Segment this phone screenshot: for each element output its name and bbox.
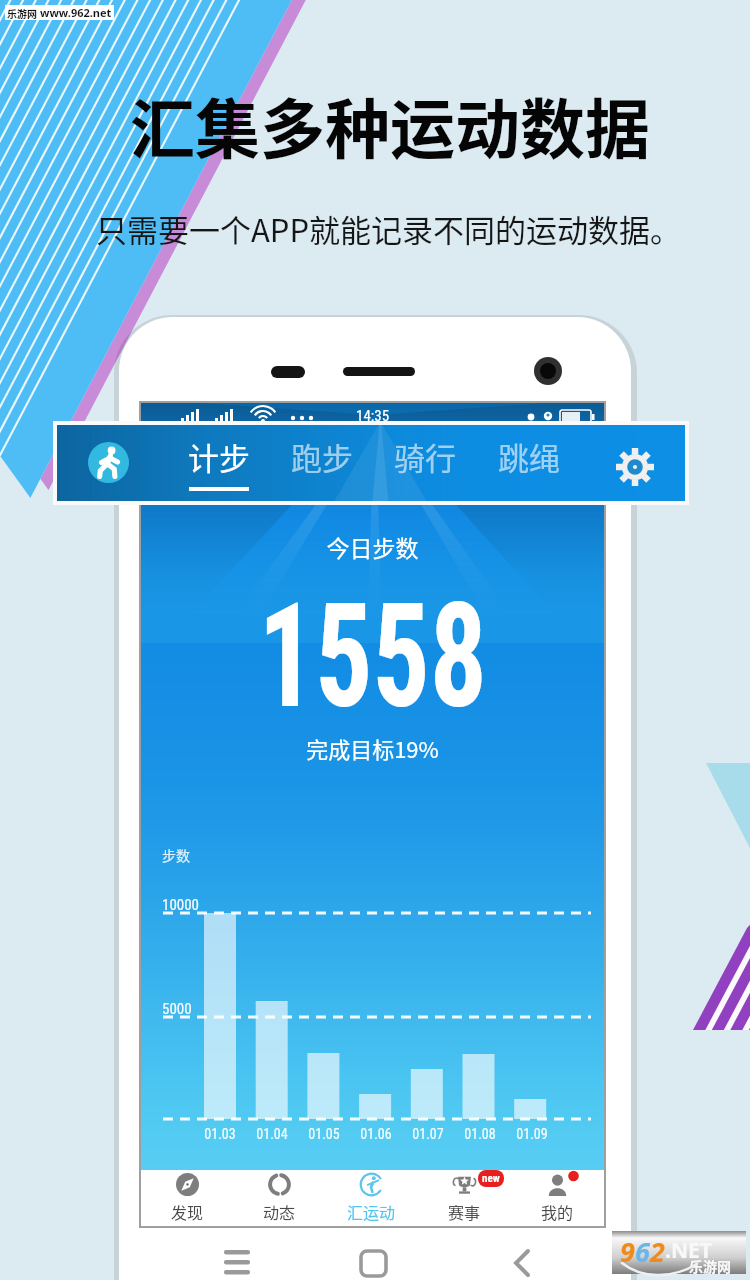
- staticText: 乐游网: [7, 6, 37, 20]
- staticText: 01.07: [402, 1126, 454, 1142]
- button[interactable]: 汇运动: [325, 1170, 418, 1226]
- button[interactable]: 赛事: [418, 1170, 511, 1226]
- button[interactable]: 计步: [174, 434, 264, 498]
- button[interactable]: 乐游网: [7, 5, 112, 20]
- staticText: 动态: [263, 1200, 296, 1223]
- button[interactable]: 骑行: [380, 434, 470, 498]
- button[interactable]: 发现: [141, 1170, 233, 1226]
- staticText: .NET: [665, 1236, 712, 1265]
- staticText: 骑行: [394, 434, 456, 479]
- button[interactable]: 动态: [233, 1170, 325, 1226]
- staticText: 只需要一个APP就能记录不同的运动数据。: [96, 206, 682, 251]
- staticText: 14:35: [356, 407, 390, 425]
- button[interactable]: Settings: [616, 448, 654, 486]
- staticText: 2: [650, 1233, 665, 1270]
- staticText: 汇集多种运动数据: [130, 78, 651, 172]
- staticText: 跳绳: [498, 434, 560, 479]
- staticText: 01.03: [194, 1126, 246, 1142]
- staticText: www.962.net: [40, 5, 112, 20]
- staticText: 01.05: [298, 1126, 350, 1142]
- staticText: 今日步数: [141, 530, 604, 563]
- staticText: 汇运动: [347, 1200, 396, 1223]
- staticText: new: [482, 1172, 500, 1185]
- staticText: 01.04: [246, 1126, 298, 1142]
- staticText: 10000: [162, 896, 200, 914]
- button[interactable]: 我的: [511, 1170, 604, 1226]
- staticText: 发现: [171, 1200, 204, 1223]
- staticText: 步数: [162, 845, 190, 865]
- staticText: 6: [635, 1233, 650, 1270]
- staticText: 5000: [162, 1000, 192, 1018]
- staticText: 赛事: [448, 1200, 481, 1223]
- staticText: 01.08: [454, 1126, 506, 1142]
- staticText: 我的: [541, 1200, 574, 1223]
- staticText: 完成目标19%: [141, 732, 604, 764]
- staticText: 乐游网: [689, 1256, 731, 1276]
- staticText: 9: [620, 1233, 635, 1270]
- staticText: 01.06: [350, 1126, 402, 1142]
- staticText: 01.09: [506, 1126, 558, 1142]
- staticText: 跑步: [291, 434, 353, 479]
- staticText: 计步: [188, 434, 250, 479]
- button[interactable]: 跳绳: [484, 434, 574, 498]
- staticText: 1558: [192, 571, 553, 741]
- button[interactable]: 跑步: [277, 434, 367, 498]
- button[interactable]: Step mode: [88, 442, 129, 483]
